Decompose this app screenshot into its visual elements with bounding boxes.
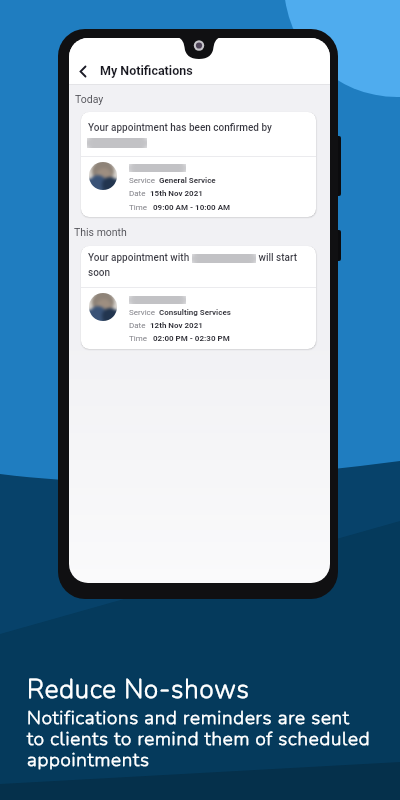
staticText: soon xyxy=(88,267,111,279)
staticText: Today xyxy=(75,93,104,105)
staticText: 15th Nov 2021 xyxy=(150,189,203,198)
staticText: will start xyxy=(256,252,298,264)
staticText: Service xyxy=(129,308,156,317)
staticText: General Service xyxy=(159,176,216,185)
button[interactable]: Your appointment has been confirmed by xyxy=(81,112,316,217)
staticText: Consulting Services xyxy=(159,308,231,317)
staticText: Date xyxy=(129,189,146,198)
staticText: Service xyxy=(129,176,156,185)
staticText: Date xyxy=(129,321,146,330)
staticText: 09:00 AM - 10:00 AM xyxy=(153,203,231,212)
staticText: 02:00 PM - 02:30 PM xyxy=(153,334,230,343)
staticText: 12th Nov 2021 xyxy=(150,321,203,330)
staticText: Reduce No-shows xyxy=(27,672,250,707)
staticText: Notifications and reminders are sent to … xyxy=(27,705,371,773)
button[interactable] xyxy=(73,62,93,82)
staticText: This month xyxy=(74,226,127,238)
button[interactable]: Your appointment with xyxy=(81,246,316,349)
staticText: My Notifications xyxy=(100,63,193,78)
staticText: Your appointment has been confirmed by xyxy=(88,122,272,134)
staticText: Time xyxy=(129,203,147,212)
staticText: Time xyxy=(129,334,147,343)
staticText: Your appointment with xyxy=(88,252,192,264)
